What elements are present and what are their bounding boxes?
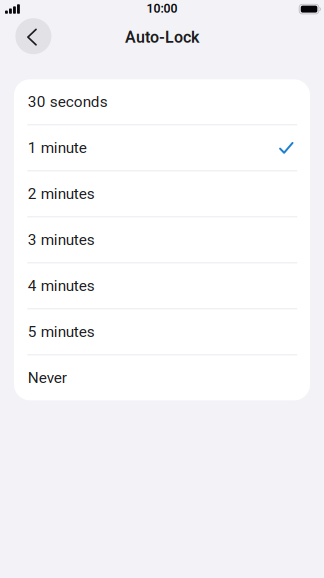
button[interactable]: Never [14, 355, 310, 400]
button[interactable]: 4 minutes [14, 263, 310, 308]
staticText: 2 minutes [28, 185, 95, 203]
staticText: 4 minutes [28, 277, 95, 295]
staticText: Never [28, 369, 67, 387]
button[interactable]: 1 minute [14, 125, 310, 170]
button[interactable]: 3 minutes [14, 217, 310, 262]
staticText: 30 seconds [28, 93, 108, 111]
staticText: Auto-Lock [125, 28, 199, 47]
button[interactable]: 5 minutes [14, 309, 310, 354]
staticText: 5 minutes [28, 323, 95, 341]
staticText: 1 minute [28, 139, 87, 157]
button[interactable]: 2 minutes [14, 171, 310, 216]
staticText: 3 minutes [28, 231, 95, 249]
staticText: 10:00 [146, 1, 177, 16]
button[interactable]: 30 seconds [14, 79, 310, 124]
button[interactable]: Back [15, 21, 51, 57]
